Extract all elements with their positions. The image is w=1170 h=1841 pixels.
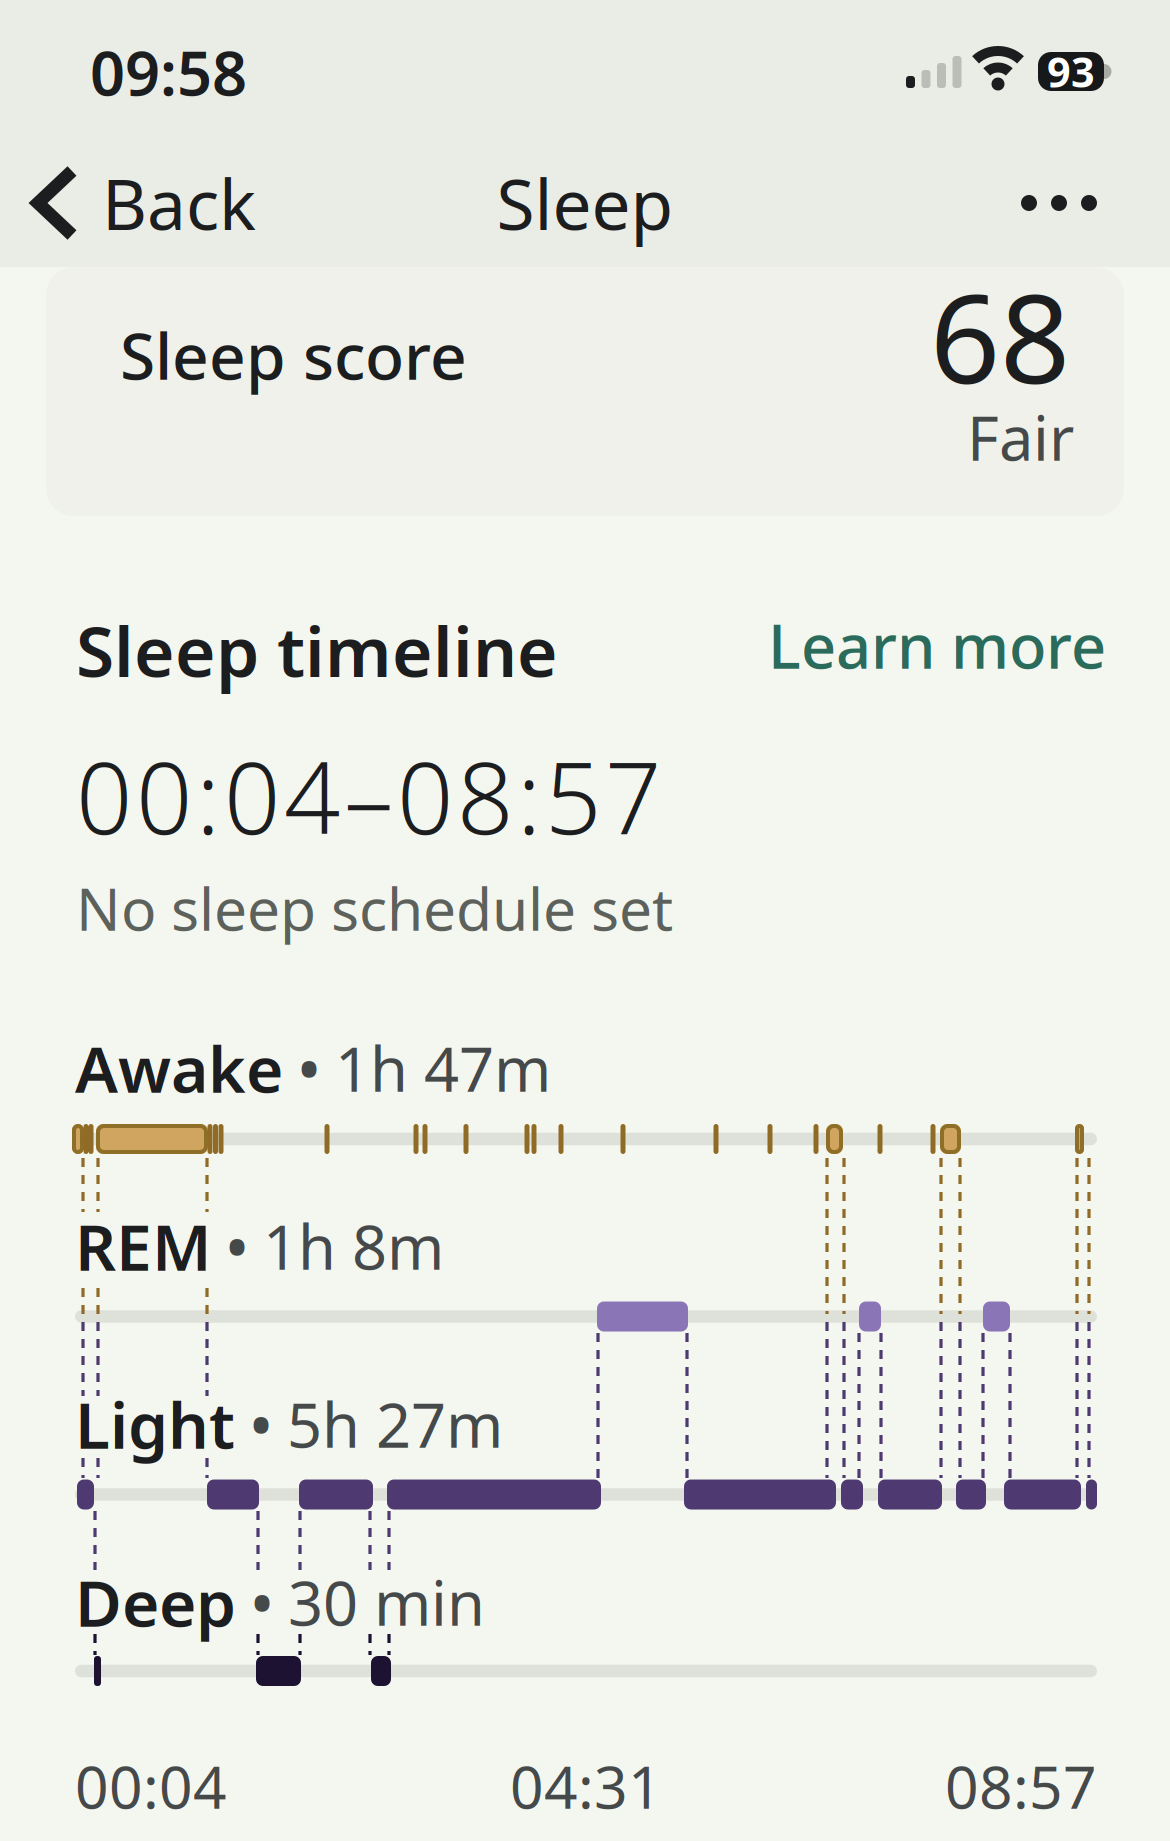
staticText: •	[227, 1211, 247, 1281]
button[interactable]: Sleep score	[46, 267, 1124, 516]
button[interactable]: Back	[28, 163, 256, 243]
staticText: REM	[75, 1203, 211, 1288]
staticText: 1h 47m	[335, 1027, 551, 1109]
button[interactable]: Learn more	[686, 614, 1106, 676]
staticText: Sleep	[496, 157, 673, 249]
staticText: Sleep score	[120, 312, 467, 397]
staticText: Fair	[967, 396, 1074, 478]
staticText: Deep	[75, 1559, 236, 1644]
staticText: 00:04–08:57	[76, 730, 661, 861]
staticText: 68	[930, 255, 1070, 417]
staticText: Sleep timeline	[76, 604, 558, 696]
staticText: Light	[75, 1381, 235, 1466]
staticText: •	[252, 1567, 272, 1637]
staticText: 1h 8m	[263, 1205, 444, 1287]
staticText: •	[299, 1033, 319, 1103]
staticText: Awake	[75, 1025, 283, 1110]
staticText: No sleep schedule set	[76, 869, 673, 947]
staticText: 08:57	[945, 1747, 1097, 1825]
button[interactable]	[1012, 163, 1122, 243]
staticText: Back	[102, 157, 256, 249]
staticText: 09:58	[90, 31, 247, 113]
staticText: 30 min	[288, 1561, 485, 1643]
staticText: 93	[1047, 44, 1095, 99]
staticText: 5h 27m	[287, 1383, 503, 1465]
staticText: 00:04	[75, 1747, 227, 1825]
staticText: •	[251, 1389, 271, 1459]
staticText: 04:31	[510, 1747, 662, 1825]
staticText: Learn more	[768, 604, 1106, 686]
